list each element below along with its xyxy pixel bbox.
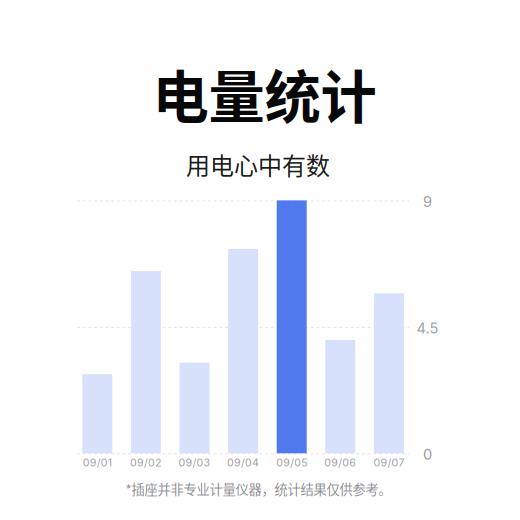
staticText: 电量统计	[152, 53, 376, 134]
button[interactable]: 09/05	[267, 200, 316, 475]
button[interactable]: 09/06	[316, 200, 365, 475]
button[interactable]: 09/04	[219, 200, 267, 475]
button[interactable]: 09/03	[170, 200, 219, 475]
button[interactable]: 09/07	[365, 200, 413, 475]
staticText: 09/07	[373, 456, 404, 469]
staticText: 09/05	[276, 456, 307, 469]
staticText: 4.5	[416, 319, 438, 337]
staticText: 9	[423, 193, 432, 210]
staticText: 09/01	[83, 456, 112, 469]
staticText: 09/03	[178, 456, 210, 469]
staticText: 0	[423, 446, 432, 463]
staticText: 09/04	[227, 456, 259, 469]
staticText: 09/02	[130, 456, 162, 469]
staticText: *插座并非专业计量仪器，统计结果仅供参考。	[125, 479, 391, 498]
button[interactable]: 09/02	[122, 200, 170, 475]
button[interactable]: 09/01	[73, 200, 122, 475]
staticText: 09/06	[324, 456, 356, 469]
staticText: 用电心中有数	[186, 147, 330, 182]
